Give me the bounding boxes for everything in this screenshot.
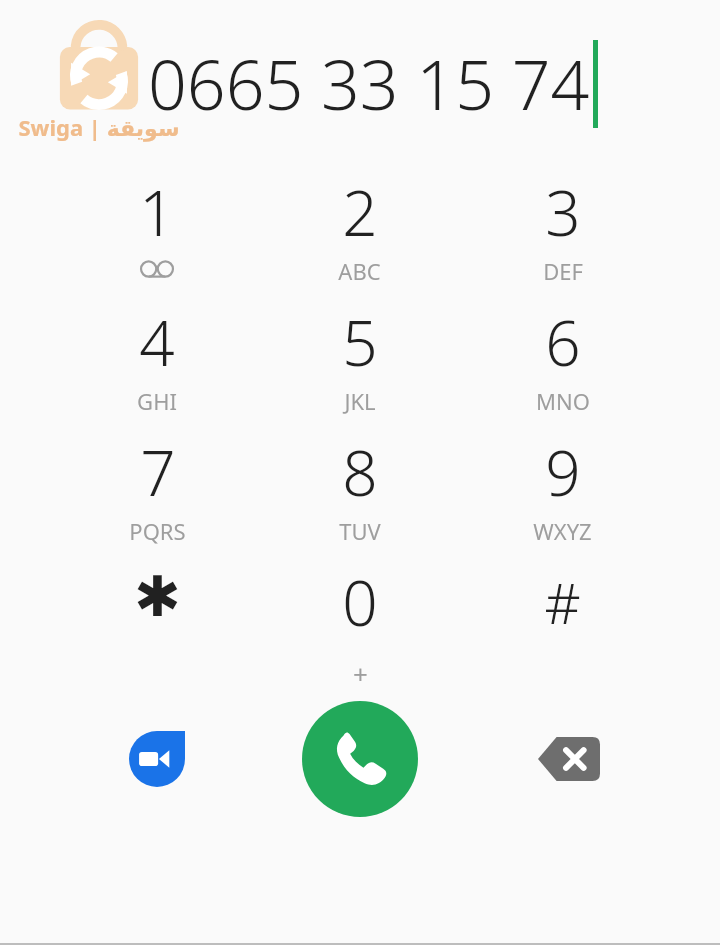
staticText: 3 (545, 170, 581, 254)
staticText: 7 (140, 430, 176, 514)
staticText: 6 (545, 300, 581, 384)
button[interactable]: 1 (56, 168, 258, 298)
staticText: 5 (342, 300, 378, 384)
staticText: # (544, 564, 581, 640)
staticText: + (353, 656, 368, 688)
button[interactable]: 8 (258, 428, 461, 558)
staticText: Swiga | سويقة (18, 112, 180, 142)
staticText: 4 (139, 300, 175, 384)
staticText: 9 (545, 430, 581, 514)
button[interactable]: 9 (461, 428, 664, 558)
button[interactable]: ✱ (56, 558, 258, 688)
staticText: MNO (536, 386, 590, 416)
staticText: 1 (139, 170, 175, 254)
button[interactable]: 7 (56, 428, 258, 558)
button[interactable]: 0 (258, 558, 461, 688)
button[interactable]: 4 (56, 298, 258, 428)
staticText: TUV (339, 516, 381, 546)
button[interactable]: # (461, 558, 664, 688)
staticText: 2 (342, 170, 378, 254)
staticText: 8 (342, 430, 378, 514)
staticText: WXYZ (533, 516, 592, 546)
button[interactable]: 5 (258, 298, 461, 428)
button[interactable]: Video call (118, 720, 196, 798)
staticText: ABC (338, 256, 381, 286)
staticText: DEF (543, 256, 583, 286)
staticText: GHI (137, 386, 177, 416)
staticText: ✱ (134, 564, 181, 629)
staticText: 0665 33 15 74 (148, 37, 590, 130)
staticText: 0 (342, 560, 378, 644)
staticText: PQRS (129, 516, 186, 546)
staticText: JKL (344, 386, 376, 416)
button[interactable]: Call (302, 701, 418, 817)
button[interactable]: 6 (461, 298, 664, 428)
button[interactable]: 3 (461, 168, 664, 298)
button[interactable]: Backspace (530, 720, 608, 798)
button[interactable]: 2 (258, 168, 461, 298)
